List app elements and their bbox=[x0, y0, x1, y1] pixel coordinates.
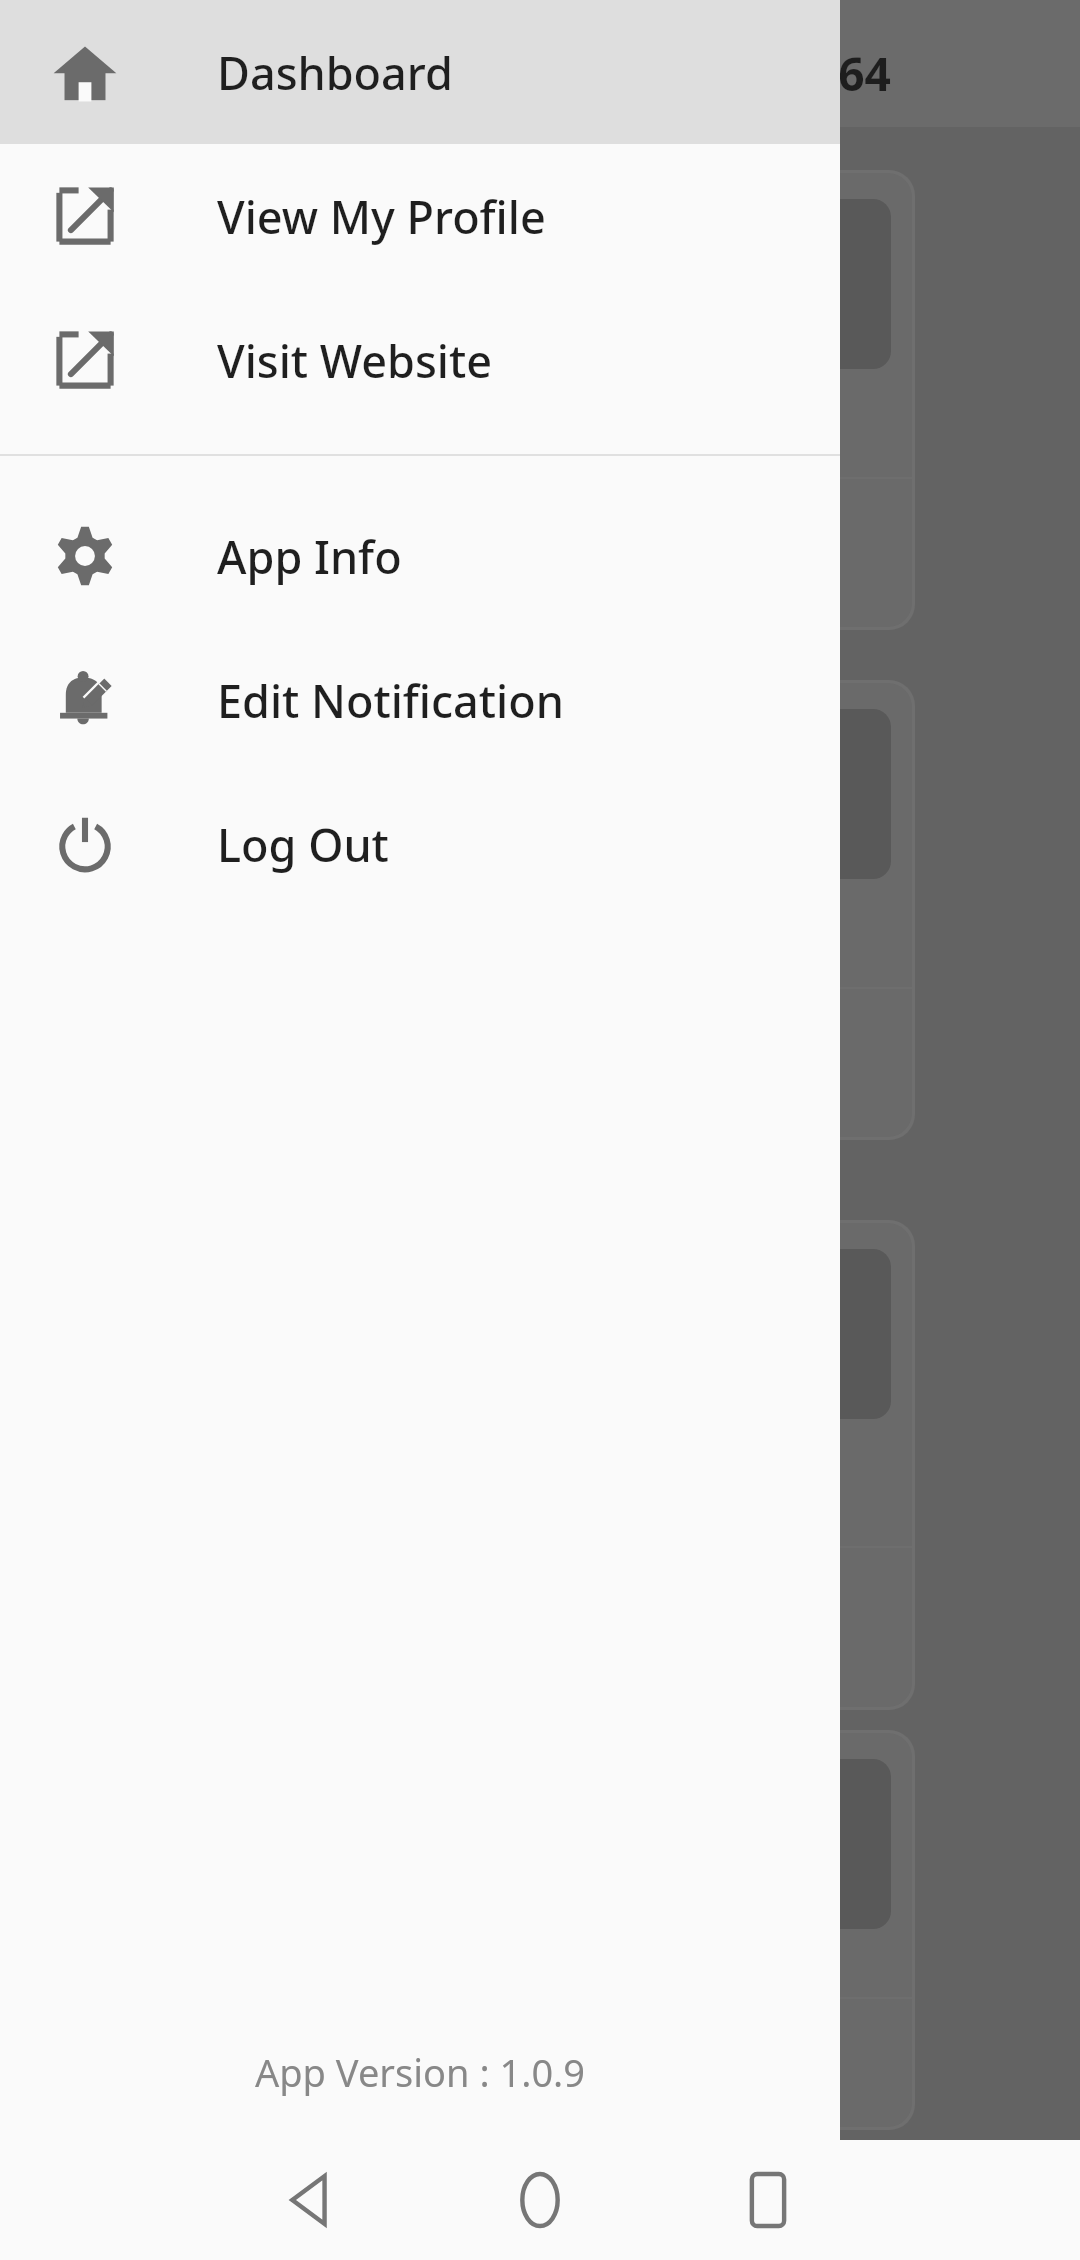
other: Dashboard bbox=[53, 40, 117, 104]
staticText: 864 bbox=[812, 42, 891, 105]
staticText: Log Out bbox=[217, 814, 389, 875]
other: App Info bbox=[53, 524, 117, 588]
other: Open link bbox=[53, 184, 117, 248]
button[interactable]: Open link bbox=[0, 288, 840, 432]
other: Open link bbox=[53, 328, 117, 392]
button[interactable]: Home bbox=[460, 2140, 620, 2260]
button[interactable]: App Info bbox=[0, 484, 840, 628]
button[interactable]: Dashboard bbox=[0, 0, 840, 144]
button[interactable]: Log Out bbox=[0, 772, 840, 916]
button[interactable]: Back bbox=[230, 2140, 390, 2260]
staticText: Edit Notification bbox=[217, 670, 564, 731]
other: Log Out bbox=[53, 812, 117, 876]
staticText: Dashboard bbox=[217, 42, 453, 103]
other: Edit Notification bbox=[53, 668, 117, 732]
button[interactable]: Open link bbox=[0, 144, 840, 288]
staticText: View My Profile bbox=[217, 186, 546, 247]
staticText: Visit Website bbox=[217, 330, 493, 391]
staticText: App Info bbox=[217, 526, 402, 587]
button[interactable]: Recent apps bbox=[688, 2140, 848, 2260]
staticText: App Version : 1.0.9 bbox=[0, 2046, 840, 2098]
button[interactable]: Edit Notification bbox=[0, 628, 840, 772]
